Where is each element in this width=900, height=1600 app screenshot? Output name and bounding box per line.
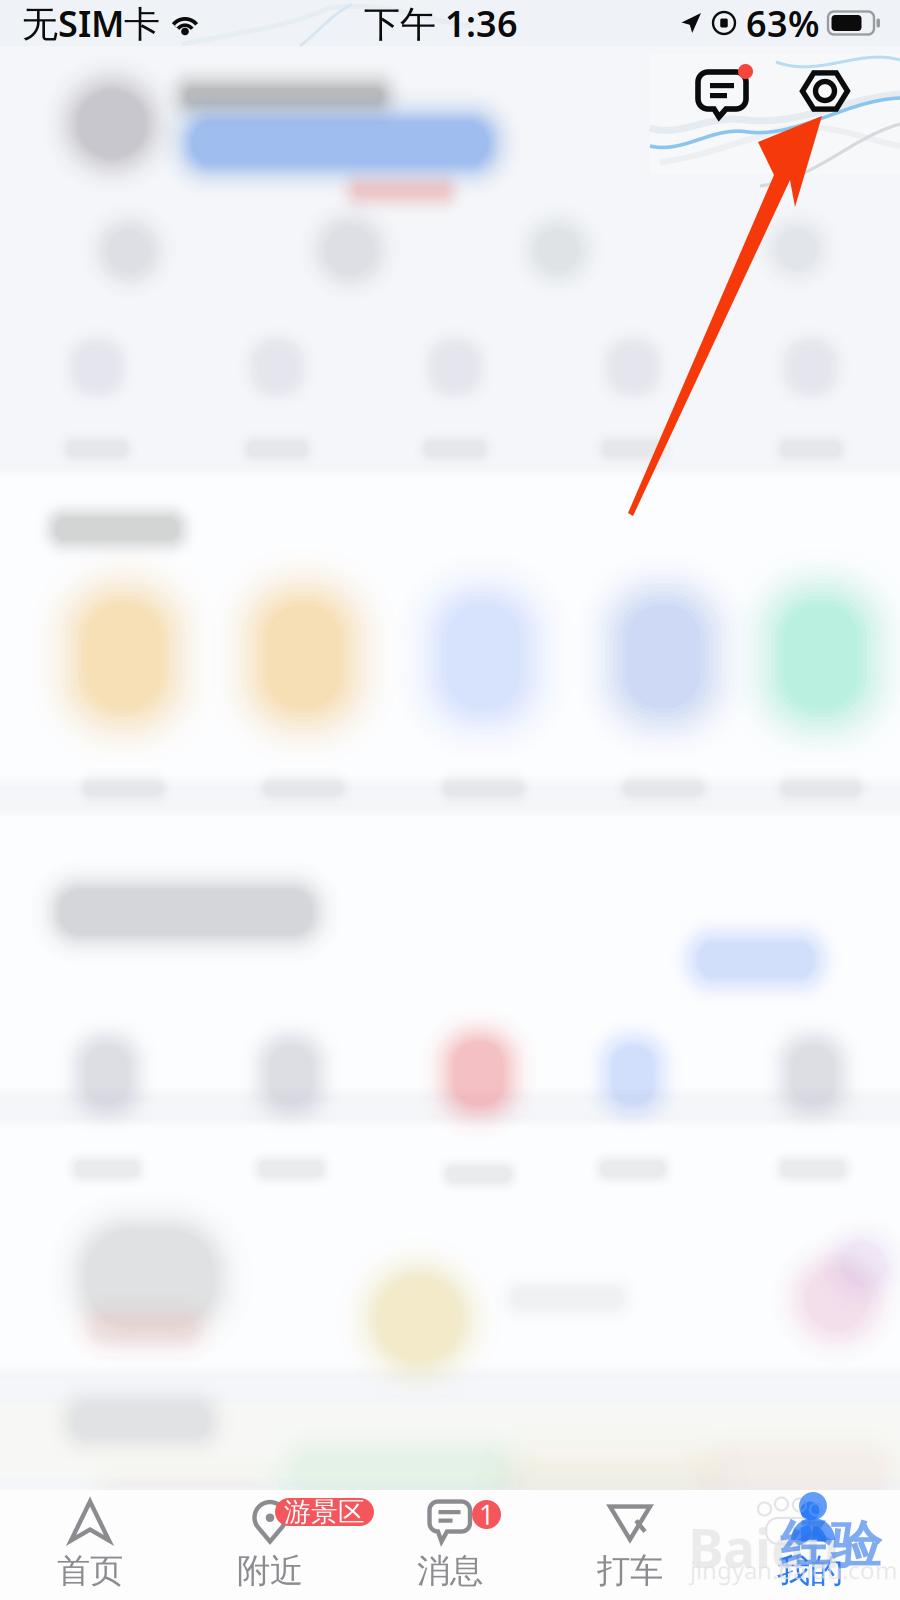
staticText: 附近: [237, 1550, 303, 1591]
staticText: 我的: [777, 1550, 843, 1591]
staticText: 63%: [746, 0, 820, 47]
staticText: 首页: [57, 1550, 123, 1591]
staticText: 打车: [597, 1550, 663, 1591]
staticText: 经验: [780, 1514, 882, 1576]
staticText: Baidu: [688, 1512, 840, 1583]
button[interactable]: 打车: [540, 1490, 720, 1600]
button[interactable]: 附近: [180, 1490, 360, 1600]
button[interactable]: 设置: [800, 66, 850, 116]
button[interactable]: 我的: [720, 1490, 900, 1600]
staticText: jingyan.baidu.com: [690, 1554, 897, 1586]
staticText: 无SIM卡: [22, 0, 160, 47]
button[interactable]: 消息: [360, 1490, 540, 1600]
button[interactable]: 消息: [695, 64, 757, 120]
staticText: 消息: [417, 1550, 483, 1591]
staticText: 下午 1:36: [364, 0, 518, 47]
button[interactable]: 首页: [0, 1490, 180, 1600]
staticText: 游景区: [284, 1496, 365, 1528]
staticText: 1: [479, 1497, 494, 1532]
